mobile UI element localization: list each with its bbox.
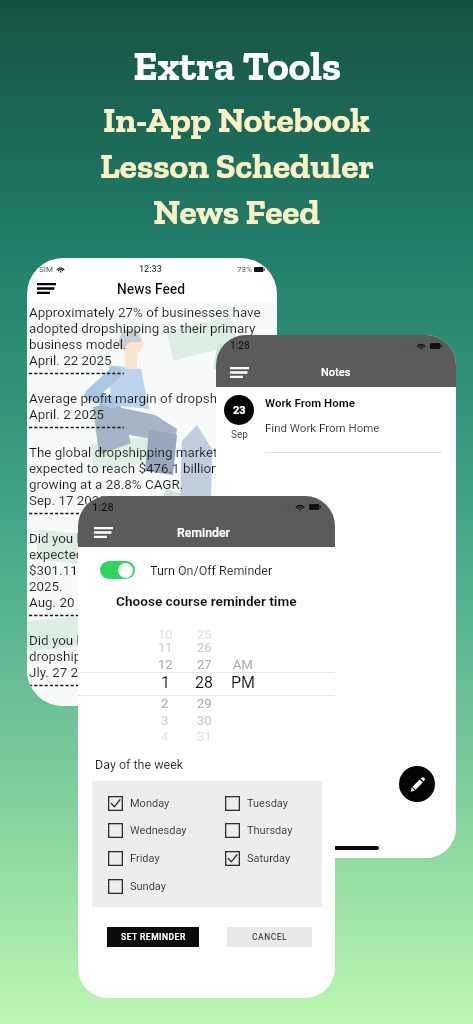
staticText: 25 bbox=[197, 627, 212, 642]
staticText: Work From Home bbox=[265, 396, 355, 409]
staticText: 3 bbox=[161, 713, 169, 728]
staticText: 29 bbox=[197, 696, 212, 711]
button[interactable]: Wednesday bbox=[106, 821, 189, 840]
staticText: Did you kn bbox=[29, 633, 91, 649]
staticText: Aug. 20 2 bbox=[29, 595, 86, 611]
button[interactable]: 23 bbox=[216, 387, 456, 453]
staticText: PM bbox=[231, 673, 256, 692]
staticText: Monday bbox=[130, 797, 170, 810]
staticText: 10 bbox=[158, 627, 173, 642]
staticText: 11 bbox=[158, 640, 173, 655]
staticText: Wednesday bbox=[130, 824, 187, 837]
staticText: Tuesday bbox=[247, 797, 288, 810]
button[interactable]: Menu bbox=[33, 279, 60, 298]
staticText: expected to reach $476.1 billion b bbox=[29, 461, 230, 477]
staticText: April. 2 2025 bbox=[29, 407, 105, 423]
staticText: The global dropshipping market is bbox=[29, 445, 231, 461]
button[interactable]: Saturday bbox=[223, 849, 293, 868]
button[interactable]: SET REMINDER bbox=[107, 927, 199, 947]
staticText: $301.11 b bbox=[29, 563, 89, 579]
staticText: 28 bbox=[195, 673, 213, 692]
button[interactable]: Add note bbox=[399, 766, 435, 802]
staticText: 1:28 bbox=[230, 340, 250, 352]
button[interactable]: Monday bbox=[106, 794, 172, 813]
staticText: April. 22 2025 bbox=[29, 353, 112, 369]
staticText: SIM bbox=[39, 265, 53, 274]
staticText: Sep bbox=[231, 429, 248, 441]
staticText: adopted dropshipping as their primary bbox=[29, 321, 256, 337]
staticText: 26 bbox=[197, 640, 212, 655]
button[interactable]: Sunday bbox=[106, 877, 168, 896]
button[interactable]: Friday bbox=[106, 849, 162, 868]
staticText: Choose course reminder time bbox=[116, 593, 297, 609]
staticText: Did you know bbox=[29, 531, 109, 547]
staticText: SET REMINDER bbox=[121, 932, 186, 942]
staticText: Thursday bbox=[247, 824, 293, 837]
staticText: Notes bbox=[321, 366, 351, 379]
staticText: Lesson Scheduler bbox=[100, 144, 374, 187]
staticText: 1 bbox=[161, 673, 170, 692]
staticText: Sunday bbox=[130, 880, 166, 893]
staticText: Reminder bbox=[177, 526, 230, 540]
staticText: 23 bbox=[233, 404, 246, 417]
staticText: 27 bbox=[197, 657, 212, 672]
staticText: Sep. 17 2025 bbox=[29, 493, 107, 509]
staticText: 73% bbox=[237, 265, 252, 274]
staticText: Average profit margin of dropship bbox=[29, 391, 228, 407]
button[interactable]: Menu bbox=[226, 363, 253, 382]
staticText: CANCEL bbox=[252, 932, 288, 942]
staticText: 4 bbox=[161, 729, 169, 744]
staticText: Approximately 27% of businesses have bbox=[29, 305, 261, 321]
button[interactable]: Thursday bbox=[223, 821, 295, 840]
staticText: Saturday bbox=[247, 852, 291, 865]
staticText: In-App Notebook bbox=[103, 98, 370, 141]
staticText: News Feed bbox=[117, 281, 186, 297]
staticText: AM bbox=[233, 657, 253, 672]
staticText: dropship bbox=[29, 649, 82, 665]
staticText: Day of the week bbox=[95, 757, 184, 772]
staticText: Find Work From Home bbox=[265, 421, 380, 434]
staticText: Extra Tools bbox=[133, 41, 341, 90]
staticText: business model. bbox=[29, 337, 127, 353]
button[interactable]: Turn On/Off Reminder bbox=[78, 558, 335, 582]
button[interactable]: Tuesday bbox=[223, 794, 290, 813]
staticText: 1:28 bbox=[92, 501, 114, 514]
staticText: growing at a 28.8% CAGR. bbox=[29, 477, 184, 493]
staticText: 2025. bbox=[29, 579, 63, 595]
staticText: News Feed bbox=[153, 190, 320, 233]
staticText: Jly. 27 20 bbox=[29, 665, 86, 681]
staticText: 31 bbox=[197, 729, 212, 744]
button[interactable]: Menu bbox=[90, 523, 117, 542]
staticText: expected bbox=[29, 547, 84, 563]
staticText: 2 bbox=[161, 696, 169, 711]
staticText: 12 bbox=[158, 657, 173, 672]
staticText: 30 bbox=[197, 713, 212, 728]
staticText: Turn On/Off Reminder bbox=[150, 563, 273, 578]
staticText: 12:33 bbox=[139, 264, 162, 275]
button[interactable]: CANCEL bbox=[227, 927, 312, 947]
staticText: Friday bbox=[130, 852, 160, 865]
